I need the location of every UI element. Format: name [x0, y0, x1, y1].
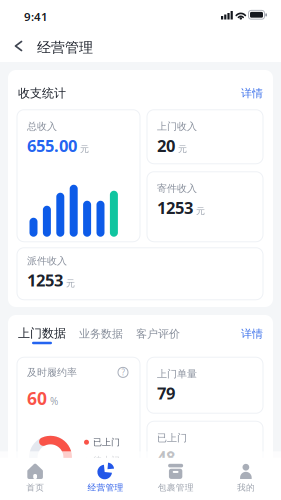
button[interactable]: 帮助: [118, 367, 128, 378]
staticText: 60: [27, 386, 47, 410]
button[interactable]: 包裹管理: [140, 457, 211, 500]
staticText: ?: [121, 367, 124, 378]
staticText: 48: [157, 446, 175, 468]
staticText: 及时履约率: [27, 366, 77, 378]
button[interactable]: 首页: [0, 457, 70, 500]
button[interactable]: 上门数据: [18, 326, 66, 344]
staticText: 收支统计: [18, 86, 66, 101]
staticText: 元: [178, 143, 187, 154]
staticText: 详情: [241, 87, 263, 100]
staticText: 经营管理: [37, 39, 93, 56]
staticText: 已上门: [93, 437, 120, 448]
staticText: 上门收入: [157, 120, 197, 132]
staticText: 待上门: [93, 455, 120, 466]
button[interactable]: Back: [0, 40, 37, 52]
staticText: 业务数据: [79, 327, 123, 340]
staticText: 包裹管理: [158, 482, 194, 493]
staticText: 上门数据: [18, 326, 66, 341]
staticText: 客户评价: [136, 327, 180, 340]
staticText: 派件收入: [27, 255, 67, 267]
staticText: 寄件收入: [157, 182, 197, 194]
staticText: 20: [157, 134, 175, 156]
staticText: 上门单量: [157, 368, 197, 380]
staticText: 首页: [26, 482, 44, 493]
staticText: 元: [66, 278, 75, 289]
staticText: 我的: [237, 482, 255, 493]
staticText: 详情: [241, 327, 263, 340]
button[interactable]: 经营管理: [70, 457, 140, 500]
staticText: 1253: [27, 269, 63, 291]
button[interactable]: 客户评价: [136, 326, 180, 340]
button[interactable]: 我的: [211, 457, 281, 500]
button[interactable]: 详情: [241, 326, 263, 340]
staticText: 9:41: [24, 9, 48, 24]
staticText: 元: [80, 143, 89, 154]
staticText: 已上门: [157, 432, 187, 444]
staticText: 655.00: [27, 134, 77, 156]
staticText: 1253: [157, 196, 193, 218]
staticText: 经营管理: [87, 482, 123, 493]
staticText: 总收入: [27, 120, 57, 132]
staticText: 元: [196, 205, 205, 216]
staticText: %: [50, 394, 58, 408]
staticText: 79: [157, 382, 175, 404]
button[interactable]: 业务数据: [79, 326, 123, 340]
button[interactable]: 详情: [241, 87, 263, 100]
